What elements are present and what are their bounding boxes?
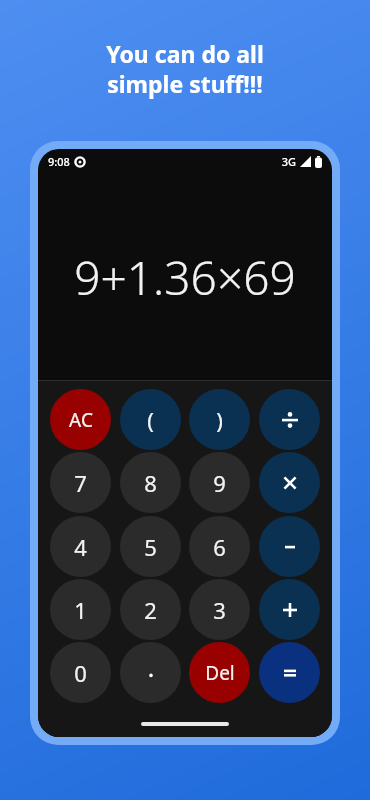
button[interactable]: Del <box>189 642 250 703</box>
button[interactable]: Subtract <box>259 516 320 577</box>
button[interactable]: 5 <box>120 516 181 577</box>
button[interactable]: ( <box>120 389 181 450</box>
button[interactable]: ) <box>189 389 250 450</box>
staticText: 3 <box>213 595 226 625</box>
button[interactable]: 0 <box>50 642 111 703</box>
button[interactable]: 4 <box>50 516 111 577</box>
button[interactable]: AC <box>50 389 111 450</box>
staticText: 6 <box>213 532 226 562</box>
button[interactable]: Multiply <box>259 452 320 513</box>
button[interactable]: 3 <box>189 579 250 640</box>
staticText: 0 <box>74 658 87 688</box>
staticText: 4 <box>74 532 87 562</box>
staticText: 7 <box>74 468 87 498</box>
staticText: 2 <box>144 595 157 625</box>
staticText: 8 <box>144 468 157 498</box>
button[interactable]: 2 <box>120 579 181 640</box>
button[interactable]: Add <box>259 579 320 640</box>
button[interactable]: 9 <box>189 452 250 513</box>
button[interactable]: 6 <box>189 516 250 577</box>
button[interactable]: Divide <box>259 389 320 450</box>
staticText: Del <box>205 660 235 686</box>
button[interactable]: Equals <box>259 642 320 703</box>
staticText: You can do all simple stuff!!! <box>0 38 370 100</box>
staticText: ( <box>147 405 154 435</box>
button[interactable]: 7 <box>50 452 111 513</box>
staticText: 5 <box>144 532 157 562</box>
staticText: 9:08 <box>48 154 70 169</box>
staticText: 9+1.36×69 <box>74 246 296 309</box>
staticText: 3G <box>281 154 296 169</box>
staticText: 1 <box>74 595 87 625</box>
staticText: 9 <box>213 468 226 498</box>
staticText: ) <box>216 405 223 435</box>
button[interactable]: 1 <box>50 579 111 640</box>
button[interactable]: 8 <box>120 452 181 513</box>
staticText: AC <box>69 407 93 433</box>
button[interactable]: Decimal point <box>120 642 181 703</box>
